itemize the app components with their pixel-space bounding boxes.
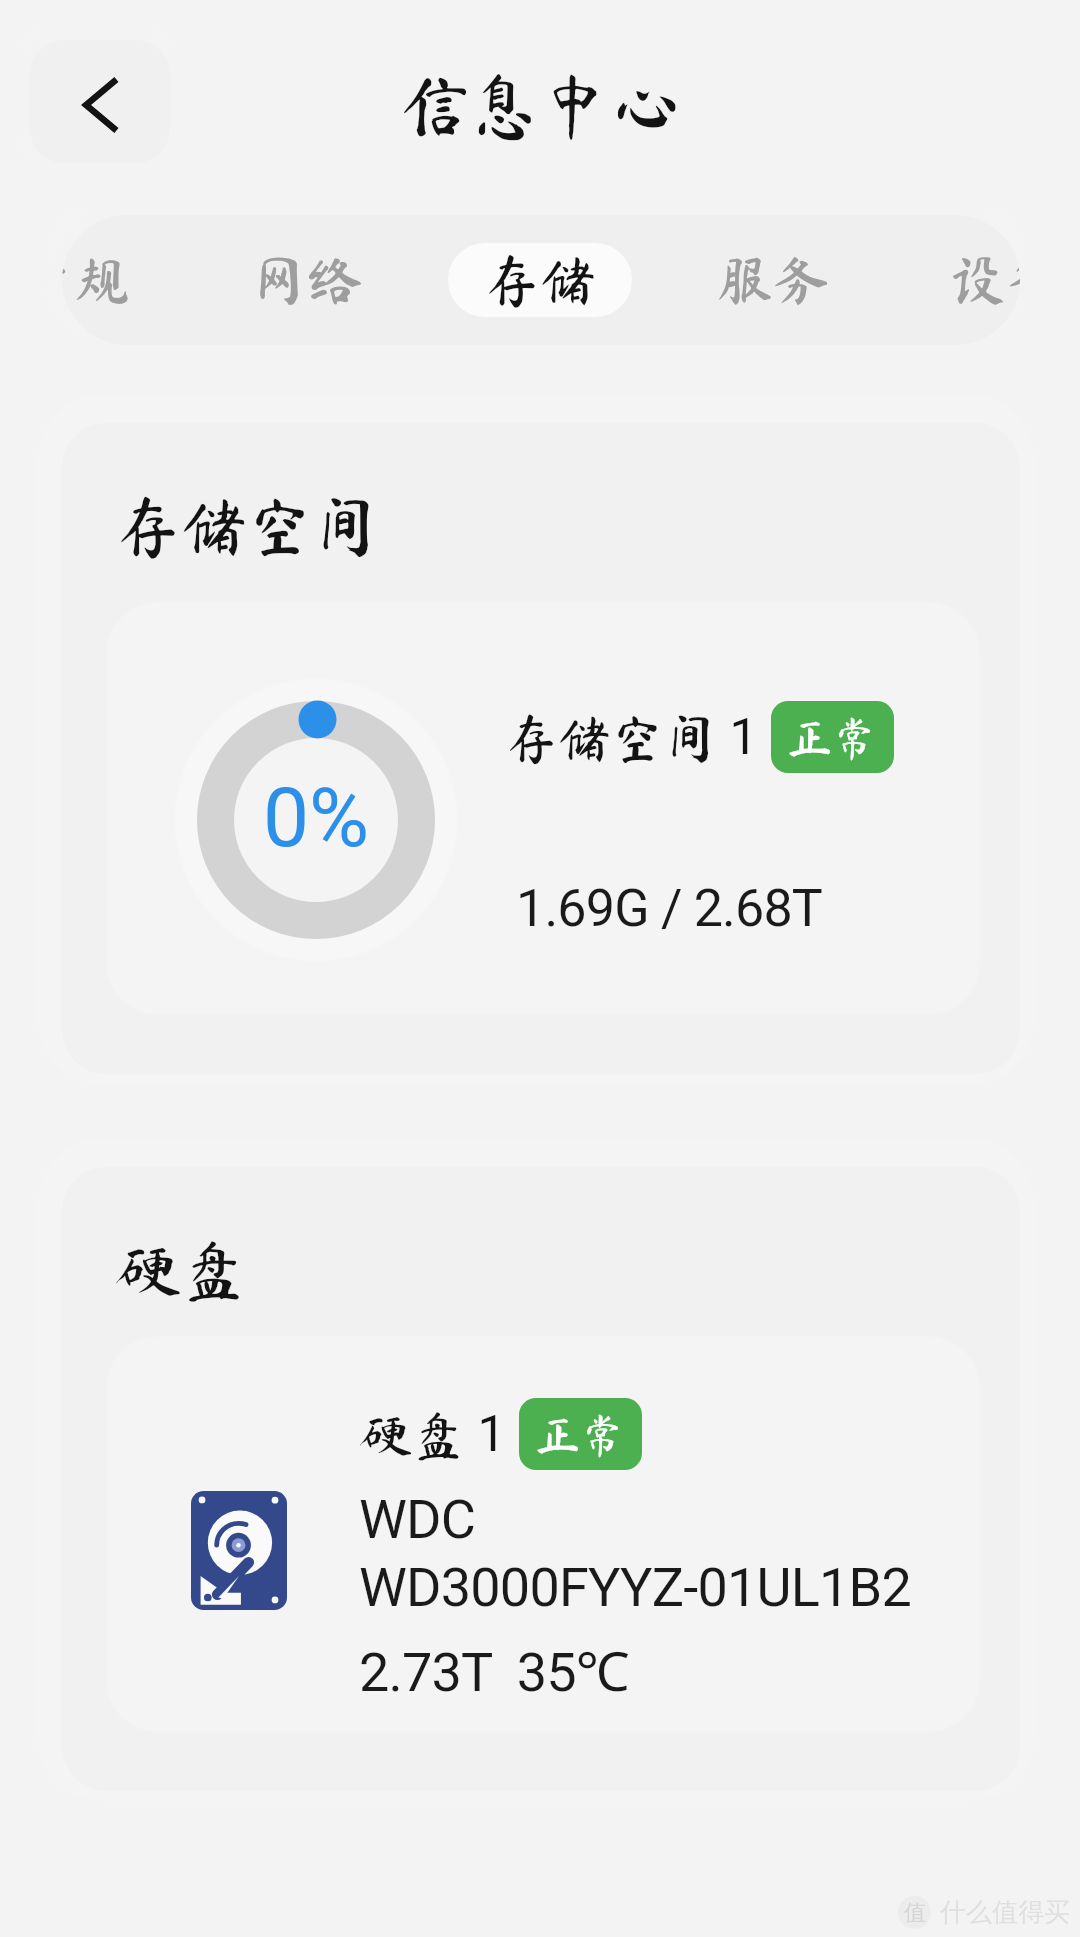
button[interactable]: 常规 <box>62 243 166 317</box>
staticText: 1.69G / 2.68T <box>516 878 823 939</box>
staticText: 2.73T 35℃ <box>359 1633 629 1707</box>
staticText: 正常 <box>535 1412 626 1457</box>
button[interactable]: 正常 <box>519 1398 642 1470</box>
button[interactable]: 正常 <box>771 701 894 773</box>
staticText: WDC <box>359 1488 476 1551</box>
button[interactable]: 服务 <box>681 243 865 317</box>
staticText: 信息中心 <box>400 70 680 140</box>
staticText: 设备 <box>950 252 1020 308</box>
staticText: 正常 <box>787 715 878 760</box>
button[interactable]: 网络 <box>215 243 399 317</box>
button[interactable]: 0% <box>126 626 970 1009</box>
staticText: 1 <box>717 708 758 767</box>
staticText: 存储空间 <box>505 711 717 764</box>
staticText: 0% <box>263 770 370 866</box>
staticText: WD3000FYYZ-01UL1B2 <box>359 1556 911 1619</box>
staticText: 常规 <box>62 252 130 308</box>
staticText: 1 <box>465 1405 506 1464</box>
button[interactable]: 存储 <box>448 243 632 317</box>
staticText: 存储空间 <box>115 493 379 559</box>
button[interactable]: 硬盘 <box>126 1360 970 1726</box>
staticText: 什么值得买 <box>940 1896 1070 1929</box>
staticText: 硬盘 <box>359 1408 465 1461</box>
staticText: 硬盘 <box>115 1237 247 1303</box>
staticText: 网络 <box>251 252 363 308</box>
staticText: 值 <box>904 1899 926 1927</box>
button[interactable]: 设备 <box>914 243 1020 317</box>
staticText: 服务 <box>717 252 829 308</box>
button[interactable]: Back <box>30 40 170 163</box>
staticText: 存储 <box>484 252 596 308</box>
